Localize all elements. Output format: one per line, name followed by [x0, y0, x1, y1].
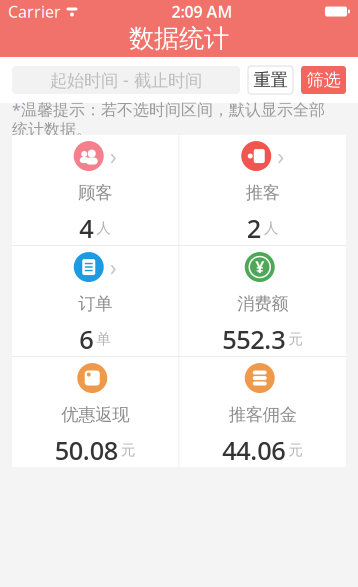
button[interactable]: › [12, 246, 178, 356]
staticText: 6 [79, 322, 93, 356]
staticText: 人 [264, 219, 279, 237]
staticText: *温馨提示：若不选时间区间，默认显示全部统计数据。 [12, 98, 325, 139]
staticText: 订单 [78, 293, 112, 314]
staticText: 50.08 [55, 433, 118, 467]
staticText: 数据统计 [129, 23, 229, 54]
button[interactable]: 推客佣金 [179, 357, 346, 467]
button[interactable]: 起始时间 - 截止时间 [12, 66, 240, 94]
staticText: 起始时间 - 截止时间 [50, 68, 202, 91]
staticText: Carrier [8, 1, 61, 22]
staticText: 推客佣金 [229, 404, 297, 425]
button[interactable]: › [179, 135, 346, 245]
staticText: › [110, 252, 117, 282]
staticText: 筛选 [306, 69, 340, 91]
staticText: 元 [121, 441, 136, 459]
staticText: 重置 [253, 69, 287, 91]
staticText: 优惠返现 [61, 404, 129, 425]
staticText: 人 [96, 219, 111, 237]
staticText: 元 [288, 330, 303, 348]
staticText: 44.06 [222, 433, 285, 467]
staticText: 2:09 AM [171, 1, 232, 22]
button[interactable]: › [12, 135, 178, 245]
staticText: 4 [79, 211, 93, 245]
staticText: 2 [247, 211, 261, 245]
button[interactable]: 优惠返现 [12, 357, 178, 467]
staticText: 顾客 [78, 182, 112, 203]
staticText: 消费额 [237, 293, 288, 314]
button[interactable]: ¥ [179, 246, 346, 356]
staticText: › [277, 141, 284, 171]
staticText: 推客 [246, 182, 280, 203]
button[interactable]: 重置 [248, 66, 293, 94]
staticText: 552.3 [222, 322, 285, 356]
staticText: › [110, 141, 117, 171]
staticText: ¥ [255, 256, 264, 278]
button[interactable]: 筛选 [301, 66, 346, 94]
staticText: 元 [288, 441, 303, 459]
staticText: 单 [96, 330, 111, 348]
